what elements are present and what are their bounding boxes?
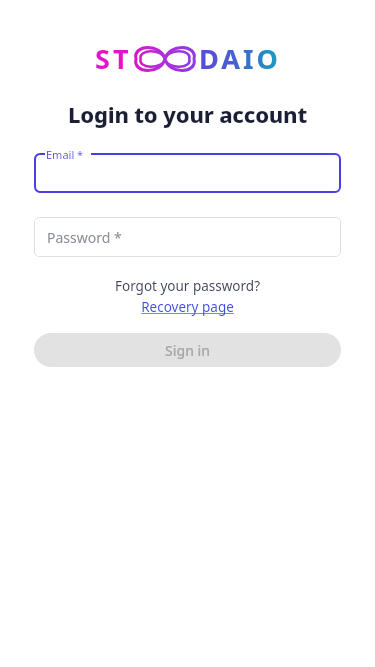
- staticText: ST: [95, 40, 132, 77]
- staticText: Login to your account: [0, 99, 375, 129]
- staticText: Forgot your password?: [0, 277, 375, 295]
- staticText: Email *: [46, 147, 84, 162]
- staticText: DAIO: [199, 40, 281, 77]
- button[interactable]: Password *: [34, 217, 341, 257]
- button[interactable]: [34, 153, 341, 193]
- staticText: Sign in: [165, 341, 211, 360]
- staticText: Password *: [47, 228, 122, 247]
- button[interactable]: Recovery page: [139, 297, 236, 317]
- button[interactable]: Sign in: [34, 333, 341, 367]
